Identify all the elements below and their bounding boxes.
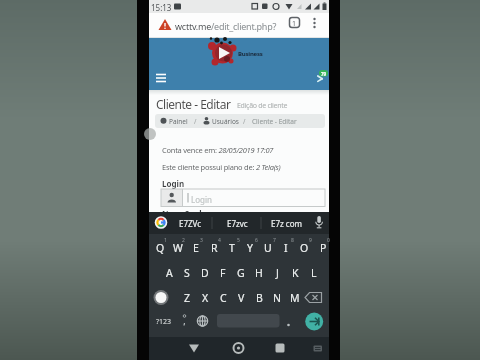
button[interactable]: S [179,264,195,281]
button[interactable]: R [206,239,222,256]
staticText: Cliente - Editar [252,117,297,126]
button[interactable] [151,289,171,306]
button[interactable] [264,212,310,234]
staticText: T [229,241,235,255]
staticText: X [202,291,209,305]
staticText: Este cliente possui plano de: 2 Tela(s) [162,162,281,172]
button[interactable] [227,337,251,360]
staticText: P [320,241,327,255]
staticText: Business [238,50,263,58]
staticText: Cliente - Editar [156,96,231,112]
button[interactable] [301,289,325,306]
staticText: G [237,266,245,280]
button[interactable] [151,69,171,84]
button[interactable]: D [197,264,213,281]
button[interactable]: O [296,239,312,256]
staticText: J [276,266,279,280]
button[interactable]: K [287,264,303,281]
button[interactable]: T [224,239,240,256]
staticText: 7 [273,237,276,244]
staticText: Z [184,291,191,305]
staticText: N [273,291,281,305]
button[interactable]: Login [161,189,325,207]
button[interactable]: W [170,239,186,256]
staticText: L [311,266,317,280]
button[interactable]: L [306,264,322,281]
button[interactable] [305,312,324,331]
button[interactable]: E [188,239,204,256]
staticText: C [220,291,227,305]
button[interactable]: C [215,289,231,306]
button[interactable]: H [251,264,267,281]
staticText: A [166,266,173,280]
staticText: Q [156,241,165,255]
staticText: 8 [291,237,294,244]
staticText: E [193,241,199,255]
staticText: O [300,241,309,255]
staticText: E7ZVc [179,218,202,229]
button[interactable]: X [197,289,213,306]
button[interactable] [182,337,206,360]
button[interactable]: V [233,289,249,306]
staticText: H [255,266,263,280]
staticText: 5 [237,237,240,244]
staticText: 2 [182,237,185,244]
staticText: F [220,266,226,280]
staticText: K [292,266,299,280]
button[interactable]: U [260,239,276,256]
button[interactable]: I [278,239,294,256]
button[interactable]: B [251,289,267,306]
staticText: / [243,117,246,126]
staticText: 15:13 [151,2,172,13]
button[interactable] [307,337,327,360]
staticText: ?123 [156,317,172,327]
staticText: 6 [255,237,258,244]
staticText: W [173,241,183,255]
button[interactable]: F [215,264,231,281]
staticText: 1 [292,19,297,29]
staticText: wcttv.me/edit_client.php? [175,20,277,32]
staticText: V [238,291,245,305]
button[interactable]: wcttv.me/edit_client.php? [149,13,329,38]
button[interactable]: M [287,289,303,306]
button[interactable] [193,312,212,330]
staticText: Login [162,178,185,189]
staticText: U [264,241,272,255]
button[interactable] [174,212,210,234]
button[interactable]: Q [152,239,168,256]
staticText: 0 [327,237,330,244]
staticText: Usuários [212,117,239,126]
staticText: 1 [164,237,167,244]
staticText: D [201,266,209,280]
staticText: M [290,291,300,305]
staticText: S [184,266,190,280]
staticText: E7zvc [227,218,248,229]
button[interactable] [268,337,292,360]
staticText: Edição de cliente [237,101,288,111]
staticText: 9 [309,237,312,244]
button[interactable]: P [315,239,331,256]
button[interactable]: Z [179,289,195,306]
button[interactable]: G [233,264,249,281]
button[interactable]: Y [242,239,258,256]
staticText: B [256,291,263,305]
staticText: Nova Senha [162,208,210,219]
staticText: Login [191,194,212,205]
button[interactable]: A [161,264,177,281]
button[interactable] [151,312,177,330]
staticText: E7z com [271,218,303,229]
button[interactable]: N [269,289,285,306]
button[interactable] [310,212,329,234]
button[interactable] [219,212,259,234]
staticText: 79 [321,71,327,77]
staticText: 3 [200,237,203,244]
button[interactable]: J [269,264,285,281]
staticText: Conta vence em: 28/05/2019 17:07 [162,145,274,155]
staticText: I [284,241,288,255]
staticText: Y [247,241,253,255]
staticText: 4 [218,237,221,244]
button[interactable] [217,314,280,328]
staticText: R [211,241,218,255]
staticText: Painel [169,117,188,126]
button[interactable]: Painel [155,114,325,128]
